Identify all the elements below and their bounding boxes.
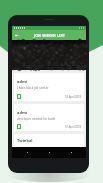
- staticText: 16 April 2018: [65, 125, 81, 129]
- button[interactable]: JOB SEEKER LIST: [12, 30, 86, 40]
- button[interactable]: Profile: [17, 124, 21, 129]
- button[interactable]: Back: [12, 30, 21, 40]
- button[interactable]: admi: [14, 104, 84, 131]
- staticText: I hate black job seeker: [17, 86, 49, 90]
- button[interactable]: admi: [14, 73, 84, 101]
- staticText: admi: [17, 79, 28, 84]
- button[interactable]: Navigation: [20, 147, 34, 158]
- staticText: JOB SEEKER LIST: [34, 33, 65, 38]
- button[interactable]: Navigation: [64, 147, 78, 158]
- staticText: admi: [17, 110, 28, 115]
- staticText: Twinkal: [17, 138, 33, 143]
- button[interactable]: Navigation: [42, 147, 56, 158]
- button[interactable]: Twinkal: [14, 134, 84, 148]
- staticText: 16 April 2018: [65, 95, 81, 99]
- staticText: developer needed for bank: [17, 117, 56, 121]
- button[interactable]: Profile: [17, 94, 21, 99]
